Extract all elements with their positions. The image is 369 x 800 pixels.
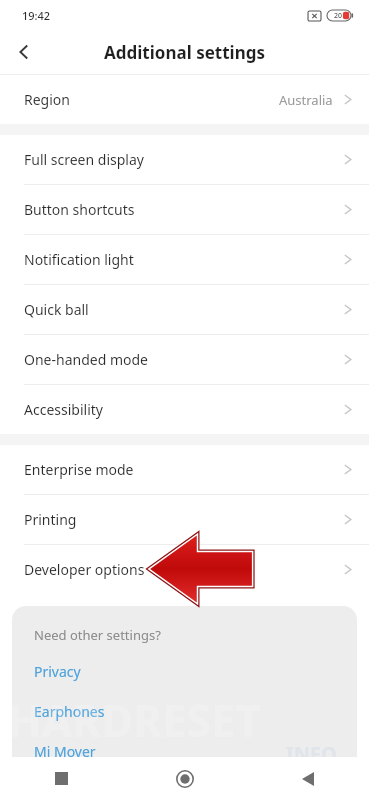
staticText: Full screen display xyxy=(24,150,144,169)
staticText: Printing xyxy=(24,510,77,529)
button[interactable]: Mi Mover xyxy=(34,742,96,761)
button[interactable]: Accessibility xyxy=(0,385,369,434)
staticText: Notification light xyxy=(24,250,134,269)
button[interactable]: Enterprise mode xyxy=(0,445,369,494)
button[interactable]: Privacy xyxy=(34,662,81,681)
button[interactable]: Region xyxy=(0,75,369,124)
staticText: Quick ball xyxy=(24,300,89,319)
button[interactable]: Back xyxy=(0,30,48,74)
staticText: INFO xyxy=(286,740,337,767)
button[interactable]: Printing xyxy=(0,495,369,544)
staticText: Developer options xyxy=(24,560,145,579)
button[interactable]: Home xyxy=(123,757,246,800)
staticText: Privacy xyxy=(34,662,81,681)
button[interactable]: Developer options xyxy=(0,545,369,594)
button[interactable]: Full screen display xyxy=(0,135,369,184)
staticText: HARDRESET xyxy=(8,690,261,750)
staticText: Need other settings? xyxy=(34,626,161,644)
staticText: Button shortcuts xyxy=(24,200,135,219)
staticText: Additional settings xyxy=(104,41,265,64)
staticText: 19:42 xyxy=(22,8,51,23)
staticText: One-handed mode xyxy=(24,350,148,369)
staticText: Australia xyxy=(279,91,333,109)
button[interactable]: Back xyxy=(246,757,369,800)
button[interactable]: One-handed mode xyxy=(0,335,369,384)
button[interactable]: Button shortcuts xyxy=(0,185,369,234)
button[interactable]: Earphones xyxy=(34,702,105,721)
staticText: Enterprise mode xyxy=(24,460,134,479)
button[interactable]: Quick ball xyxy=(0,285,369,334)
staticText: Mi Mover xyxy=(34,742,96,761)
staticText: Earphones xyxy=(34,702,105,721)
staticText: 20 xyxy=(334,11,343,21)
staticText: Region xyxy=(24,90,70,109)
staticText: Accessibility xyxy=(24,400,103,419)
button[interactable]: Recents xyxy=(0,757,123,800)
button[interactable]: Notification light xyxy=(0,235,369,284)
